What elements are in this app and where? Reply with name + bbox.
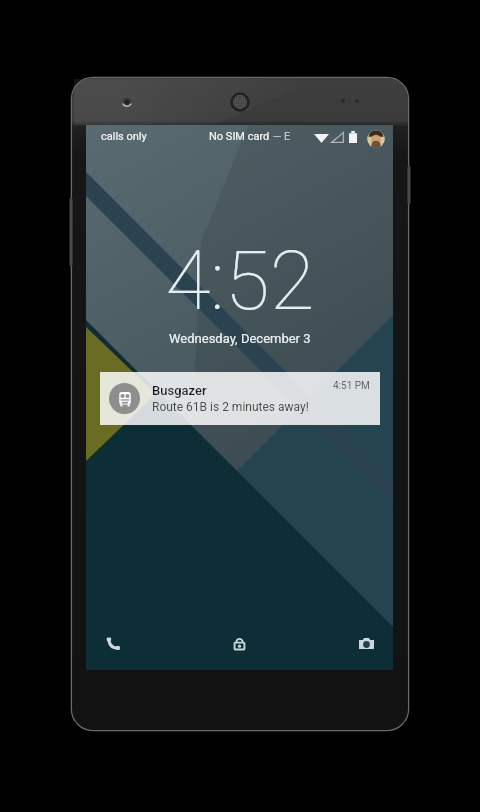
button[interactable]: Phone bbox=[96, 626, 130, 660]
staticText: calls only bbox=[101, 130, 147, 143]
staticText: — E bbox=[270, 130, 291, 143]
staticText: Route 61B is 2 minutes away! bbox=[152, 400, 309, 414]
button[interactable]: Unlock bbox=[222, 626, 256, 660]
button[interactable]: Busgazer bbox=[100, 372, 380, 425]
staticText: 4:52 bbox=[165, 233, 315, 329]
staticText: Busgazer bbox=[152, 383, 207, 398]
staticText: No SIM card bbox=[209, 130, 270, 143]
button[interactable]: Camera bbox=[349, 626, 383, 660]
staticText: Wednesday, December 3 bbox=[169, 331, 311, 346]
staticText: 4:51 PM bbox=[333, 380, 370, 392]
button[interactable]: User profile bbox=[367, 130, 385, 148]
